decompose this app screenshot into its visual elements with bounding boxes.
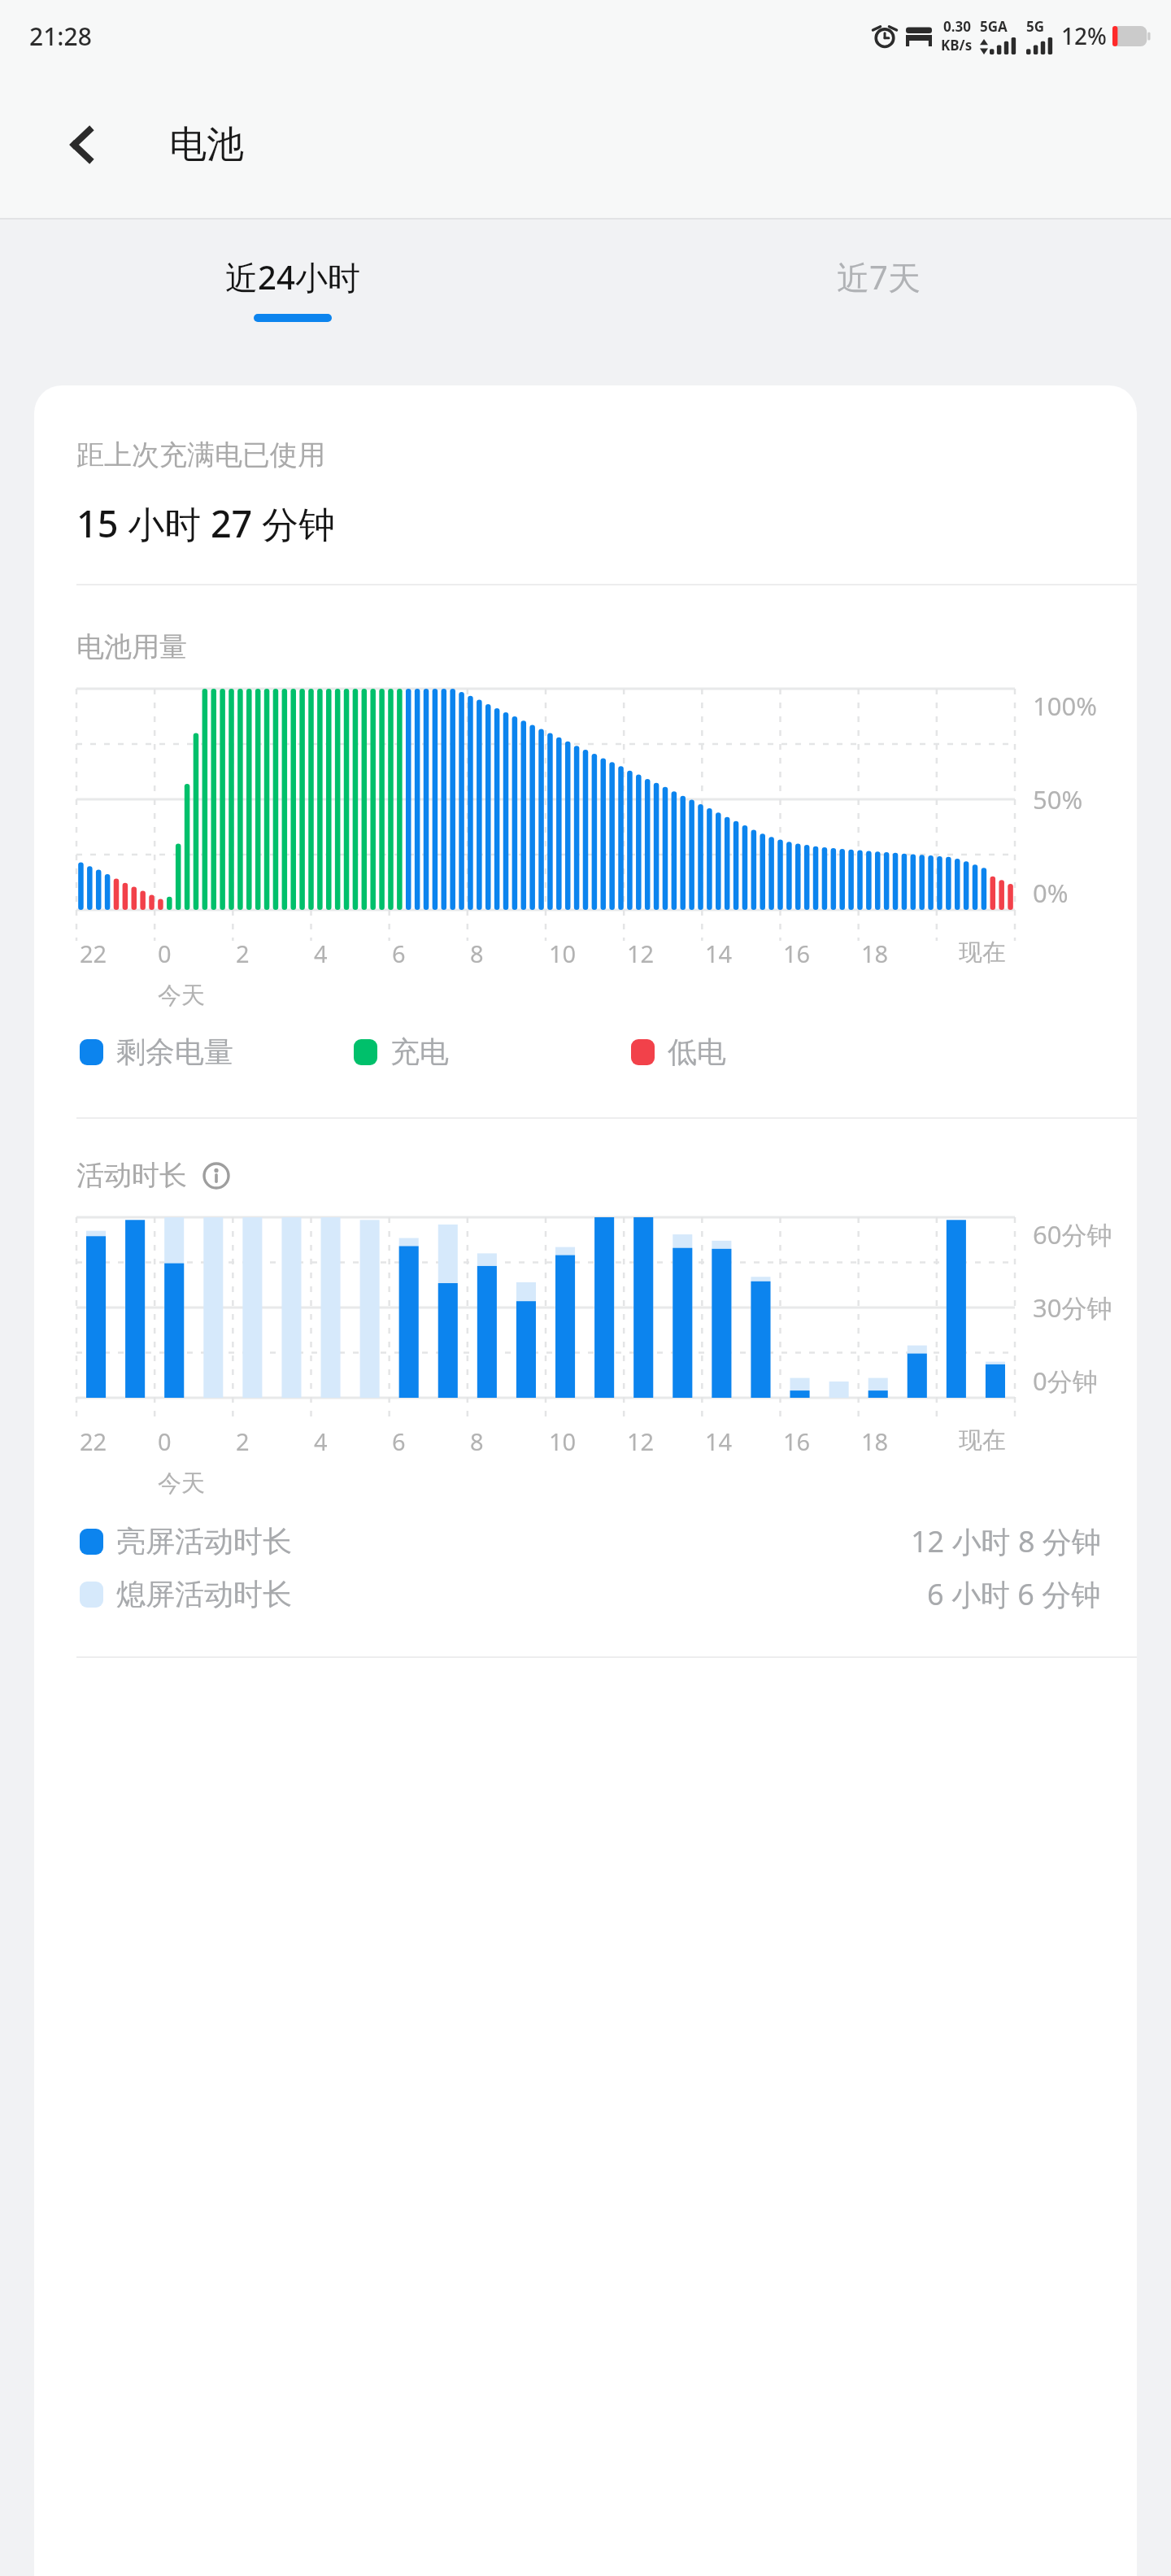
staticText: 5G <box>1026 17 1045 36</box>
staticText: 12 小时 8 分钟 <box>911 1521 1101 1561</box>
staticText: 100% <box>1033 689 1097 723</box>
staticText: 8 <box>470 1425 484 1457</box>
staticText: 22 <box>80 938 107 969</box>
staticText: 今天 <box>158 1469 205 1499</box>
staticText: 50% <box>1033 782 1083 816</box>
staticText: 14 <box>705 1425 733 1457</box>
staticText: 6 <box>392 938 406 969</box>
button[interactable]: 近24小时 <box>0 220 585 356</box>
staticText: 现在 <box>959 938 1006 968</box>
staticText: KB/s <box>941 36 973 54</box>
button[interactable]: 返回 <box>54 116 111 173</box>
staticText: 12 <box>627 1425 655 1457</box>
staticText: 4 <box>314 938 328 969</box>
staticText: 0 <box>158 938 172 969</box>
staticText: 16 <box>783 1425 811 1457</box>
staticText: 近24小时 <box>225 255 360 299</box>
staticText: 现在 <box>959 1425 1006 1456</box>
staticText: 12% <box>1061 20 1107 51</box>
staticText: 14 <box>705 938 733 969</box>
staticText: 10 <box>549 938 577 969</box>
staticText: 21:28 <box>29 20 92 53</box>
staticText: 2 <box>236 938 250 969</box>
staticText: 4 <box>314 1425 328 1457</box>
staticText: 16 <box>783 938 811 969</box>
staticText: 5GA <box>980 17 1008 36</box>
staticText: 2 <box>236 1425 250 1457</box>
staticText: 活动时长 <box>76 1158 187 1193</box>
staticText: 15 小时 27 分钟 <box>76 498 336 548</box>
staticText: 18 <box>861 1425 889 1457</box>
staticText: 12 <box>627 938 655 969</box>
staticText: 剩余电量 <box>116 1033 233 1070</box>
staticText: 0% <box>1033 876 1069 910</box>
staticText: 今天 <box>158 981 205 1011</box>
staticText: 6 <box>392 1425 406 1457</box>
staticText: 电池 <box>169 121 244 168</box>
staticText: 近7天 <box>837 255 921 299</box>
button[interactable]: 近7天 <box>585 220 1171 356</box>
staticText: 30分钟 <box>1033 1290 1112 1325</box>
staticText: 0 <box>158 1425 172 1457</box>
staticText: 熄屏活动时长 <box>116 1576 292 1612</box>
staticText: 充电 <box>390 1033 449 1070</box>
button[interactable]: 说明 <box>200 1160 233 1192</box>
staticText: 8 <box>470 938 484 969</box>
staticText: 60分钟 <box>1033 1217 1112 1251</box>
staticText: 18 <box>861 938 889 969</box>
staticText: 0分钟 <box>1033 1364 1098 1398</box>
staticText: 6 小时 6 分钟 <box>927 1574 1101 1614</box>
staticText: 电池用量 <box>76 629 187 664</box>
staticText: 0.30 <box>943 17 971 36</box>
staticText: 低电 <box>668 1033 726 1070</box>
staticText: 距上次充满电已使用 <box>76 437 325 472</box>
staticText: 亮屏活动时长 <box>116 1523 292 1560</box>
staticText: 22 <box>80 1425 107 1457</box>
staticText: 10 <box>549 1425 577 1457</box>
